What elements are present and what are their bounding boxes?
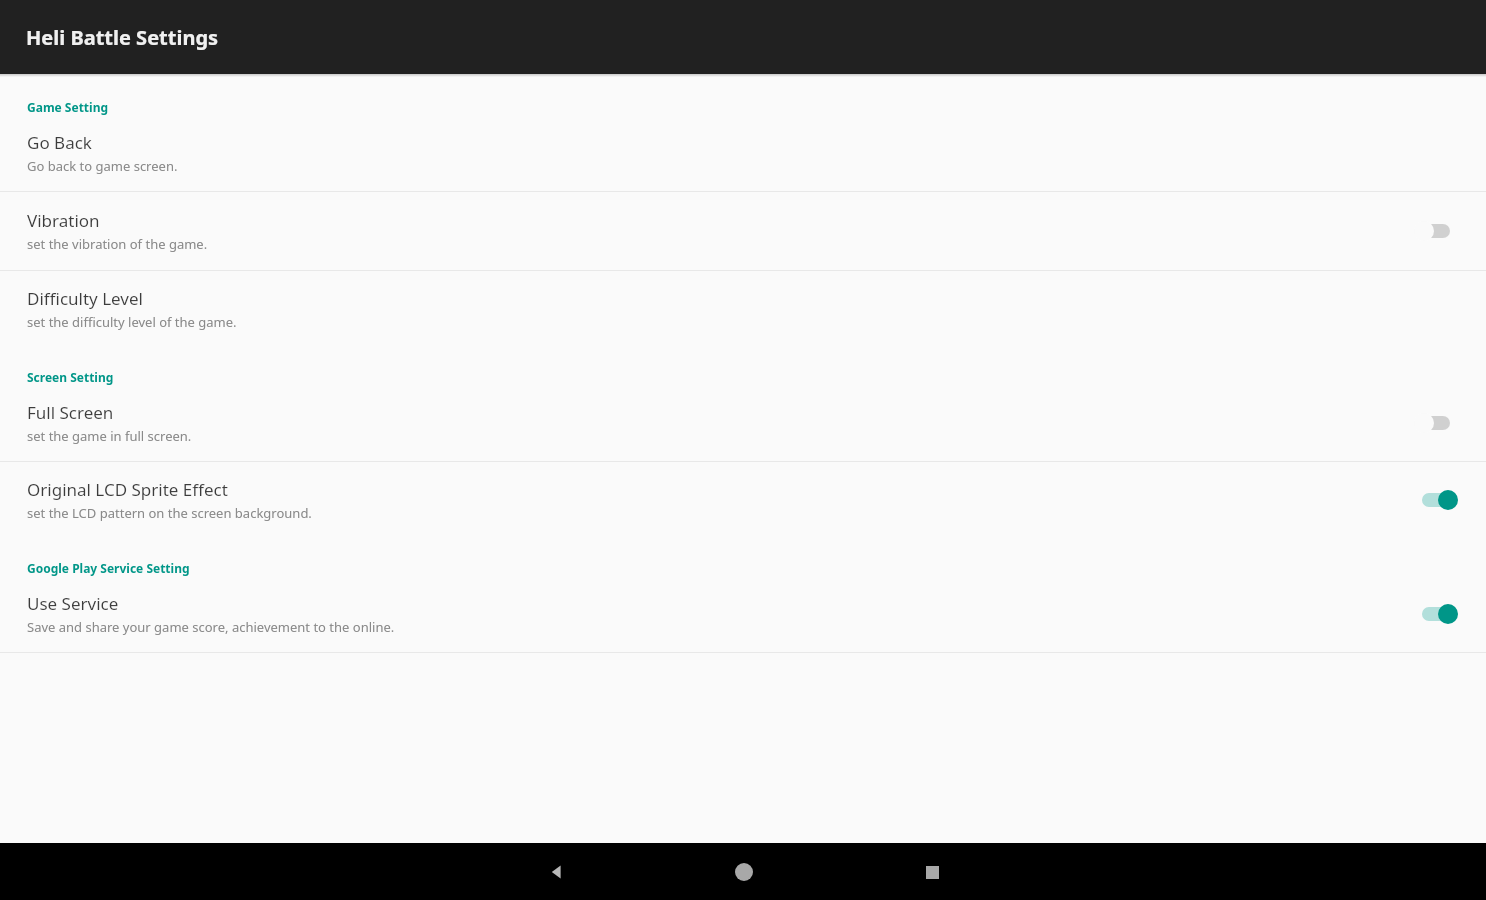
staticText: Heli Battle Settings (26, 24, 219, 51)
staticText: Go Back (27, 131, 92, 154)
staticText: Use Service (27, 592, 119, 615)
button[interactable]: Full Screen (0, 391, 1486, 461)
staticText: Screen Setting (27, 369, 114, 385)
button[interactable]: Go Back (0, 121, 1486, 191)
staticText: set the difficulty level of the game. (27, 313, 237, 331)
staticText: set the vibration of the game. (27, 235, 208, 253)
other: Off (1414, 217, 1458, 245)
staticText: Google Play Service Setting (27, 560, 190, 576)
other: On (1414, 486, 1458, 514)
staticText: Original LCD Sprite Effect (27, 478, 228, 501)
other: Off (1414, 409, 1458, 437)
staticText: Go back to game screen. (27, 157, 178, 175)
button[interactable]: Vibration (0, 192, 1486, 270)
button[interactable]: Home (722, 850, 766, 894)
staticText: Game Setting (27, 99, 109, 115)
other: On (1414, 600, 1458, 628)
button[interactable]: Back (535, 850, 579, 894)
staticText: Save and share your game score, achievem… (27, 618, 395, 636)
button[interactable]: Use Service (0, 582, 1486, 652)
staticText: Difficulty Level (27, 287, 143, 310)
button[interactable]: Original LCD Sprite Effect (0, 462, 1486, 538)
button[interactable]: Difficulty Level (0, 271, 1486, 347)
button[interactable]: Recent apps (910, 850, 954, 894)
staticText: set the game in full screen. (27, 427, 192, 445)
staticText: Full Screen (27, 401, 114, 424)
staticText: set the LCD pattern on the screen backgr… (27, 504, 312, 522)
staticText: Vibration (27, 209, 100, 232)
